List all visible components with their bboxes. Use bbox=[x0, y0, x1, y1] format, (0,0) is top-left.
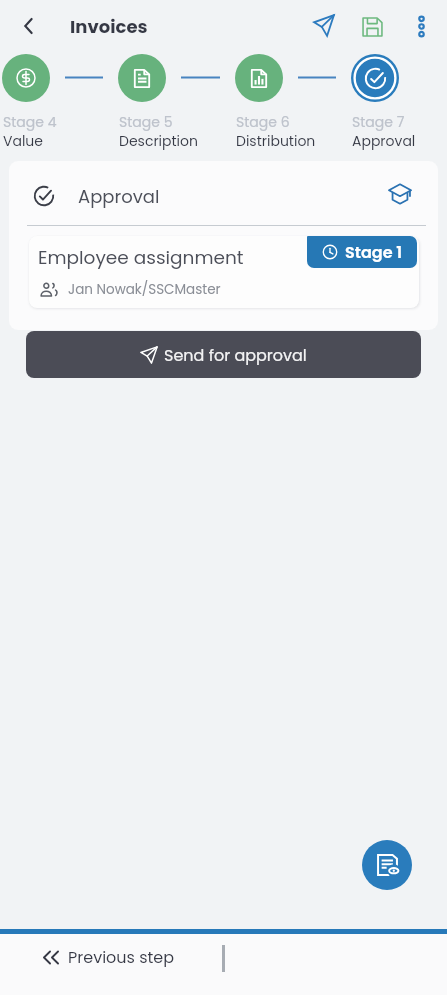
button[interactable]: Employee assignment bbox=[29, 236, 419, 308]
button[interactable]: Send for approval bbox=[26, 331, 421, 378]
staticText: Value bbox=[3, 131, 44, 151]
staticText: Stage 4 bbox=[3, 112, 57, 132]
button[interactable]: Approval bbox=[9, 161, 438, 225]
staticText: Previous step bbox=[68, 946, 175, 968]
button[interactable]: Stage 4 bbox=[2, 54, 50, 102]
button[interactable]: Preview document bbox=[362, 840, 412, 890]
staticText: Send for approval bbox=[164, 344, 307, 366]
button[interactable]: Stage 7 bbox=[351, 54, 399, 102]
staticText: Stage 5 bbox=[119, 112, 173, 132]
staticText: Invoices bbox=[70, 14, 148, 39]
button[interactable]: Stage 6 bbox=[235, 54, 283, 102]
staticText: Stage 7 bbox=[352, 112, 405, 132]
staticText: Distribution bbox=[236, 131, 316, 151]
staticText: Approval bbox=[352, 131, 416, 151]
button[interactable]: Previous step bbox=[43, 936, 175, 978]
staticText: Approval bbox=[78, 184, 160, 209]
staticText: Stage 6 bbox=[236, 112, 290, 132]
button[interactable]: Stage 1 bbox=[307, 236, 417, 268]
staticText: Stage 1 bbox=[345, 241, 403, 263]
button[interactable]: More options bbox=[401, 6, 441, 46]
button[interactable]: Back bbox=[12, 9, 46, 43]
button[interactable]: Learn more bbox=[385, 179, 415, 209]
button[interactable]: Save bbox=[352, 7, 392, 47]
staticText: Description bbox=[119, 131, 198, 151]
staticText: Employee assignment bbox=[38, 245, 244, 271]
button[interactable]: Send bbox=[304, 5, 344, 45]
button[interactable]: Stage 5 bbox=[118, 54, 166, 102]
staticText: Jan Nowak/SSCMaster bbox=[68, 280, 221, 299]
